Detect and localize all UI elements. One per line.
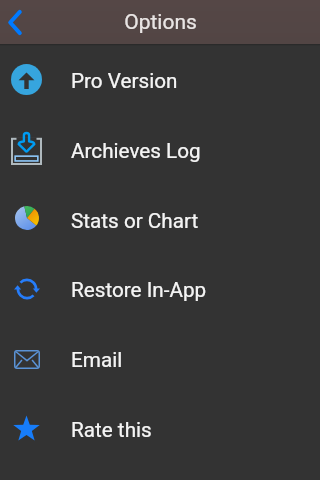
button[interactable]: Rate this: [0, 394, 320, 480]
button[interactable]: Back: [0, 0, 40, 44]
button[interactable]: Pro Version: [0, 44, 320, 114]
button[interactable]: Archieves Log: [0, 114, 320, 184]
staticText: Pro Version: [71, 69, 178, 93]
staticText: Restore In-App: [71, 278, 207, 302]
button[interactable]: Stats or Chart: [0, 184, 320, 254]
staticText: Stats or Chart: [71, 209, 199, 233]
staticText: Options: [124, 10, 197, 35]
staticText: Email: [71, 348, 123, 372]
staticText: Archieves Log: [71, 139, 201, 163]
button[interactable]: Restore In-App: [0, 254, 320, 324]
button[interactable]: Email: [0, 324, 320, 394]
staticText: Rate this: [71, 418, 152, 442]
